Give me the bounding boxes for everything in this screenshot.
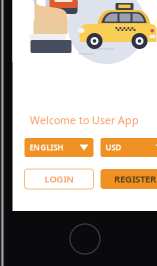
staticText: ENGLISH [29,142,63,153]
staticText: Welcome to User App [30,113,139,127]
staticText: LOGIN [44,173,73,185]
button[interactable]: USD [100,138,157,157]
button[interactable]: LOGIN [24,169,93,189]
staticText: USD [105,142,121,153]
button[interactable]: ENGLISH [24,138,93,157]
button[interactable]: REGISTER [100,169,157,189]
staticText: REGISTER [114,173,156,185]
